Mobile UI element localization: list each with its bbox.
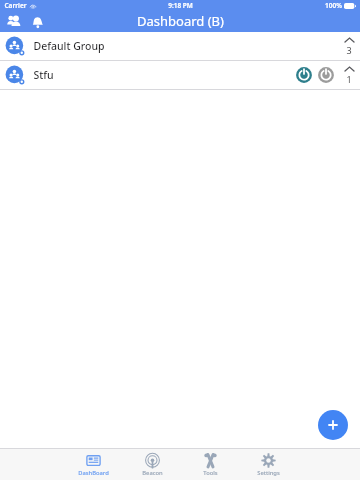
- button[interactable]: Groups: [4, 12, 24, 32]
- staticText: Beacon: [142, 469, 163, 477]
- staticText: Dashboard (B): [137, 12, 224, 30]
- button[interactable]: Settings: [245, 453, 291, 477]
- button[interactable]: Stfu: [0, 61, 360, 89]
- button[interactable]: Beacon: [129, 453, 175, 477]
- button[interactable]: Default Group: [0, 32, 360, 60]
- staticText: 3: [346, 44, 352, 56]
- staticText: Stfu: [33, 68, 54, 82]
- button[interactable]: Notifications: [27, 12, 47, 32]
- button[interactable]: 3: [338, 37, 360, 56]
- button[interactable]: Add: [318, 410, 348, 440]
- button[interactable]: Power on: [294, 65, 314, 85]
- staticText: 100%: [325, 1, 342, 10]
- button[interactable]: Power off: [316, 65, 336, 85]
- button[interactable]: Tools: [187, 453, 233, 477]
- staticText: 9:18 PM: [168, 1, 193, 10]
- staticText: DashBoard: [78, 469, 109, 477]
- button[interactable]: DashBoard: [70, 453, 116, 477]
- staticText: Tools: [203, 469, 218, 477]
- staticText: 1: [346, 73, 352, 85]
- staticText: Settings: [257, 469, 280, 477]
- staticText: Default Group: [33, 39, 105, 53]
- staticText: Carrier: [4, 1, 27, 10]
- button[interactable]: 1: [338, 66, 360, 85]
